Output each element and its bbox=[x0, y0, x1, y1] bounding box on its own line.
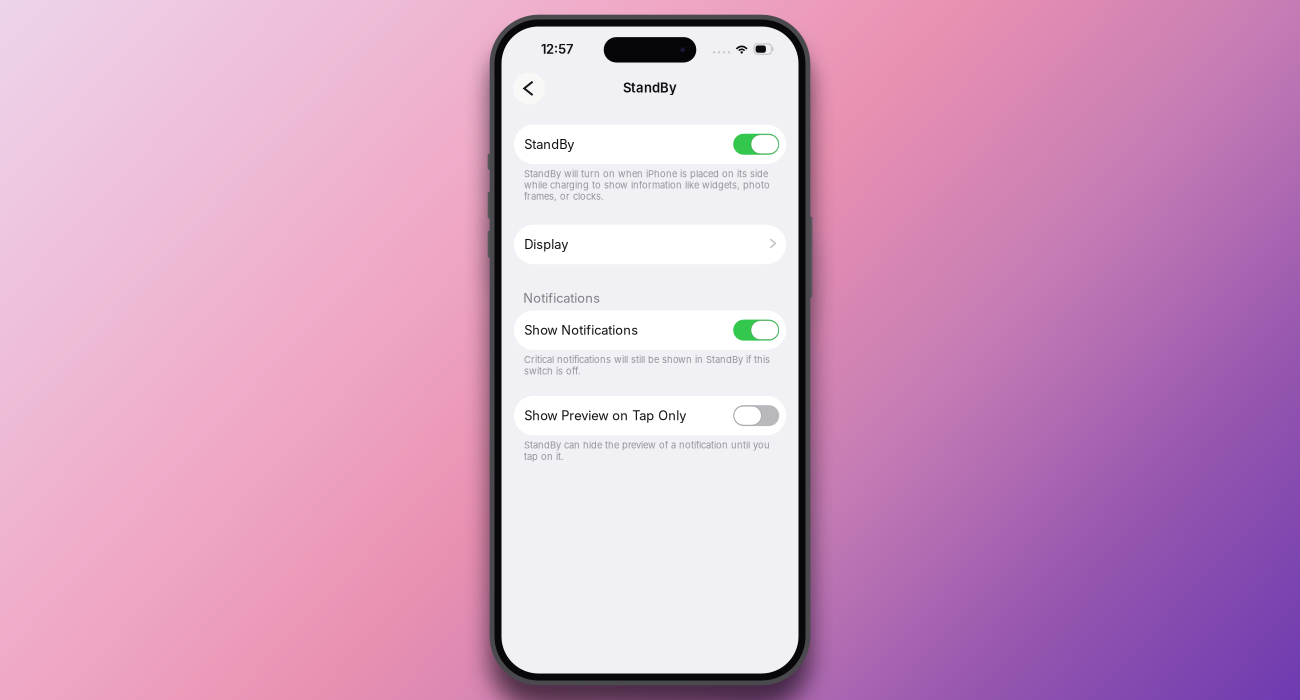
staticText: StandBy bbox=[524, 136, 574, 152]
staticText: Show Notifications bbox=[524, 322, 638, 338]
staticText: 12:57 bbox=[541, 41, 573, 57]
button[interactable]: Show Notifications bbox=[514, 310, 786, 350]
button[interactable]: Show Preview on Tap Only bbox=[514, 396, 786, 435]
staticText: StandBy can hide the preview of a notifi… bbox=[524, 440, 770, 462]
staticText: Critical notifications will still be sho… bbox=[524, 354, 770, 377]
staticText: StandBy will turn on when iPhone is plac… bbox=[524, 168, 770, 202]
staticText: Show Preview on Tap Only bbox=[524, 408, 686, 423]
staticText: Notifications bbox=[523, 290, 600, 306]
staticText: StandBy bbox=[623, 80, 677, 96]
button[interactable]: Display bbox=[514, 225, 786, 264]
staticText: Display bbox=[524, 237, 568, 252]
button[interactable]: StandBy bbox=[514, 124, 786, 164]
button[interactable]: Back bbox=[513, 71, 545, 104]
